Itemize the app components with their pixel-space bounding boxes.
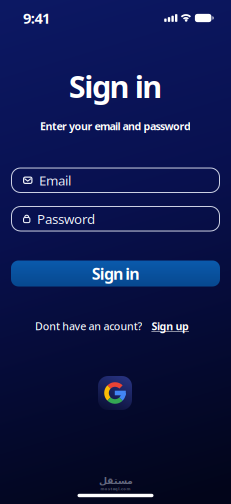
staticText: Password	[37, 210, 95, 228]
button[interactable]: Sign up	[151, 319, 189, 333]
staticText: Email	[39, 171, 71, 189]
staticText: 9:41	[23, 8, 50, 28]
staticText: Sign up	[151, 319, 189, 333]
button[interactable]: Password	[11, 206, 220, 231]
button[interactable]: Email	[11, 167, 220, 193]
staticText: مستقل	[98, 475, 132, 486]
staticText: mostaql.com	[100, 486, 130, 491]
button[interactable]: Sign in with Google	[98, 376, 132, 410]
staticText: Dont have an acount?	[35, 319, 142, 333]
staticText: Sign in	[69, 66, 162, 106]
button[interactable]: Sign in	[11, 260, 220, 286]
staticText: Sign in	[92, 263, 139, 284]
staticText: Enter your email and password	[40, 119, 191, 133]
